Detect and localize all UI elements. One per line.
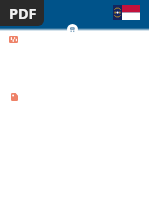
other: Image not loaded [9,36,18,43]
other: File not loaded [11,93,18,101]
button[interactable]: PDF [0,0,44,26]
button[interactable]: North Carolina flag [113,5,140,20]
staticText: PDF [9,3,37,23]
